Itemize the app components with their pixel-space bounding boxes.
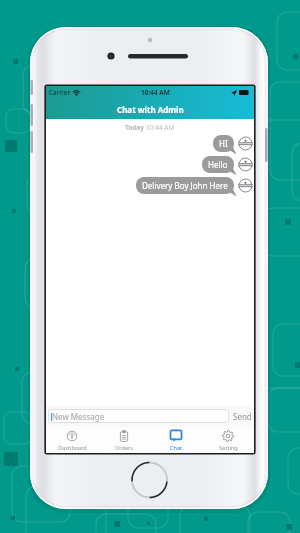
staticText: 10:44 AM (141, 88, 170, 97)
staticText: Dashboard (58, 444, 87, 451)
button[interactable]: HI (213, 135, 234, 152)
staticText: Orders (115, 444, 133, 451)
staticText: Setting (219, 444, 238, 451)
button[interactable]: Send (233, 408, 252, 425)
button[interactable]: Chat (150, 428, 202, 453)
staticText: New Message (52, 411, 105, 422)
staticText: 10:44 AM (146, 123, 175, 132)
staticText: Chat with Admin (117, 104, 184, 115)
button[interactable]: Dashboard (46, 428, 98, 453)
button[interactable]: Orders (98, 428, 150, 453)
staticText: Today (125, 123, 146, 132)
staticText: Hello (208, 159, 228, 170)
button[interactable]: Delivery Boy John Here (136, 177, 234, 194)
staticText: Delivery Boy John Here (142, 180, 228, 191)
button[interactable]: Setting (202, 428, 254, 453)
button[interactable]: Hello (202, 156, 234, 173)
staticText: HI (219, 138, 228, 149)
staticText: Send (233, 411, 252, 422)
staticText: Chat (170, 444, 182, 451)
staticText: Carrier (49, 88, 71, 97)
